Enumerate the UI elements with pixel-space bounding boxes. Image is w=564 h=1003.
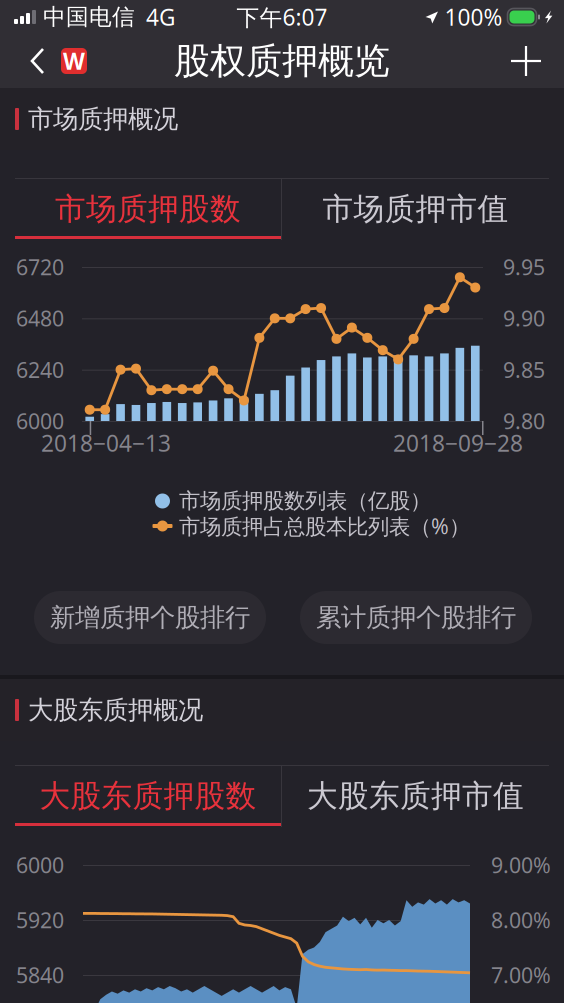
staticText: 9.85 [503,355,545,384]
staticText: 2018−04−13 [41,428,171,458]
button[interactable]: 返回 [0,44,54,78]
staticText: 6240 [16,355,64,384]
button[interactable]: 添加 [510,45,564,77]
staticText: 累计质押个股排行 [316,602,516,633]
staticText: 9.00% [491,851,551,879]
button[interactable]: 新增质押个股排行 [34,591,266,644]
staticText: 市场质押概况 [28,103,178,134]
staticText: 100% [444,2,502,32]
button[interactable]: 市场质押市值 [282,178,549,240]
button[interactable]: 市场质押股数 [15,178,281,240]
staticText: 2018−09−28 [393,428,523,458]
staticText: 大股东质押市值 [307,777,524,815]
staticText: 9.80 [503,407,545,435]
staticText: 股权质押概览 [174,39,390,83]
staticText: 9.90 [503,304,545,332]
staticText: 6720 [16,253,64,281]
staticText: 大股东质押股数 [39,777,256,815]
staticText: 中国电信 [43,3,135,31]
staticText: 6480 [16,304,64,332]
button[interactable]: 大股东质押股数 [15,765,281,827]
button[interactable]: 累计质押个股排行 [300,591,532,644]
staticText: 8.00% [491,906,551,934]
staticText: 市场质押股数列表（亿股） [179,488,431,514]
staticText: 下午6:07 [236,2,327,32]
staticText: 6000 [16,407,64,435]
staticText: 9.95 [503,253,545,281]
staticText: 市场质押股数 [55,190,241,228]
staticText: 5920 [16,906,64,934]
staticText: 7.00% [491,961,551,989]
staticText: 6000 [16,851,64,879]
staticText: 4G [146,2,176,32]
button[interactable]: 大股东质押市值 [282,765,549,827]
staticText: 大股东质押概况 [28,694,203,725]
staticText: 市场质押占总股本比列表（%） [179,512,470,540]
staticText: 5840 [16,961,64,989]
staticText: W [63,46,85,76]
staticText: 市场质押市值 [322,190,508,228]
button[interactable]: 微信 [54,40,94,82]
staticText: 新增质押个股排行 [50,602,250,633]
